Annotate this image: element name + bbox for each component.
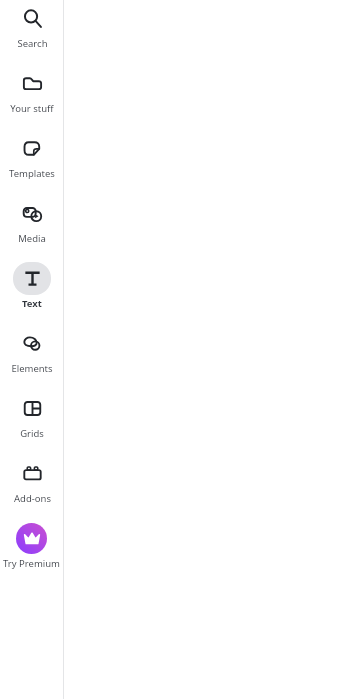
staticText: Text: [22, 297, 42, 310]
staticText: Try Premium: [3, 557, 60, 570]
button[interactable]: Templates: [0, 130, 63, 195]
staticText: Your stuff: [10, 102, 54, 115]
button[interactable]: Media: [0, 195, 63, 260]
button[interactable]: Add-ons: [0, 455, 63, 520]
button[interactable]: Search: [0, 0, 63, 65]
button[interactable]: Try Premium: [0, 520, 63, 585]
button[interactable]: Text: [0, 260, 63, 325]
staticText: Templates: [9, 167, 55, 180]
button[interactable]: Grids: [0, 390, 63, 455]
button[interactable]: Your stuff: [0, 65, 63, 130]
staticText: Elements: [11, 362, 53, 375]
button[interactable]: Elements: [0, 325, 63, 390]
staticText: Grids: [20, 427, 44, 440]
staticText: Search: [17, 37, 48, 50]
staticText: Media: [18, 232, 46, 245]
staticText: Add-ons: [14, 492, 51, 505]
